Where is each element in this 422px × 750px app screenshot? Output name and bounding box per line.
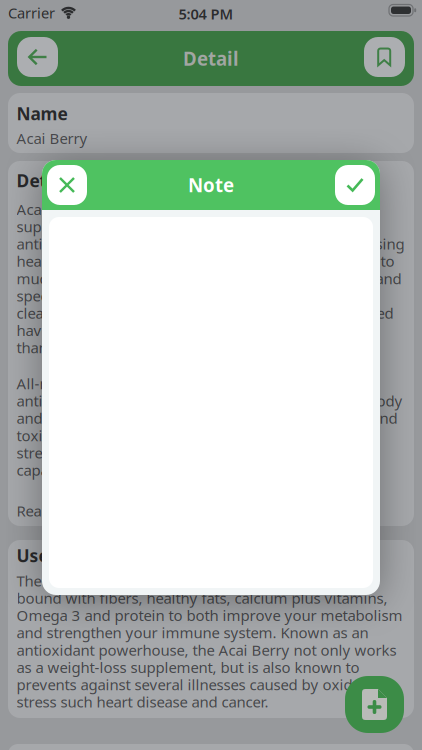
staticText: stress. The acai berry extract is also	[16, 442, 259, 463]
staticText: capable of slowing down aging.	[16, 460, 235, 480]
staticText: have also shown that its berries are hea…	[16, 320, 325, 340]
staticText: special immune functions of the body.	[16, 285, 279, 306]
button[interactable]: Read more...	[16, 502, 103, 519]
staticText: Name	[16, 102, 67, 125]
staticText: Uses	[16, 544, 57, 567]
staticText: and flush out all of those excess harmfu…	[16, 408, 397, 428]
staticText: The Acai Berry is one very special fruit…	[16, 570, 352, 591]
staticText: toxins that build up from oxidative	[16, 425, 255, 445]
staticText: health benefits that many people have be…	[16, 251, 394, 271]
staticText: Read more...	[16, 500, 103, 521]
staticText: and strengthen your immune system. Known…	[16, 622, 368, 643]
staticText: prevents against several illnesses cause…	[16, 674, 385, 695]
staticText: antioxidants which really help to protec…	[16, 391, 402, 411]
staticText: Acai Berry has become famous as a natura…	[16, 199, 314, 219]
staticText: superfood over the last years. It is an	[16, 216, 271, 237]
staticText: All-natural acai supplements are popular	[16, 373, 296, 394]
staticText: Detail	[16, 169, 67, 192]
staticText: Carrier	[8, 3, 55, 22]
staticText: stress such heart disease and cancer.	[16, 692, 268, 712]
staticText: 5:04 PM	[178, 4, 233, 23]
staticText: Acai Berry	[16, 128, 87, 148]
button[interactable]	[364, 37, 405, 77]
staticText: cleansing detox plans rely much on it an…	[16, 303, 393, 323]
staticText: antioxidant powerhouse, the Acai Berry n…	[16, 640, 396, 660]
staticText: as a weight-loss supplement, but is also…	[16, 657, 359, 677]
staticText: Omega 3 and protein to both improve your…	[16, 605, 402, 625]
staticText: Detail	[183, 46, 239, 71]
button[interactable]	[335, 165, 375, 205]
button[interactable]	[17, 37, 58, 77]
staticText: antioxidant rich fruit which is well kno…	[16, 234, 404, 254]
staticText: Note	[188, 173, 234, 197]
button[interactable]	[47, 165, 87, 205]
staticText: much improve energy levels, digestion, s…	[16, 268, 401, 288]
button[interactable]	[345, 676, 404, 733]
staticText: than most other fruits.	[16, 337, 171, 358]
staticText: bound with fibers, healthy fats, calcium…	[16, 588, 387, 608]
